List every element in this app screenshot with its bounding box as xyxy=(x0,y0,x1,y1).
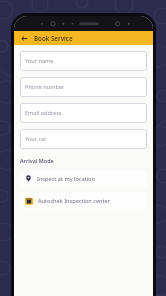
staticText: Inspect at my location xyxy=(37,175,95,183)
button[interactable]: Email address xyxy=(20,103,147,123)
button[interactable]: Autochek Inspection center xyxy=(20,192,147,209)
button[interactable]: Your car xyxy=(20,129,147,149)
staticText: Phone number xyxy=(25,83,65,91)
button[interactable]: Back xyxy=(18,32,30,44)
staticText: Your car xyxy=(25,135,47,143)
staticText: Autochek Inspection center xyxy=(38,197,111,205)
button[interactable]: Phone number xyxy=(20,77,147,97)
staticText: Arrival Mode xyxy=(20,157,54,164)
staticText: Book Service xyxy=(34,34,73,42)
staticText: Email address xyxy=(25,109,62,117)
button[interactable]: Your name xyxy=(20,51,147,71)
button[interactable]: Inspect at my location xyxy=(20,170,147,187)
staticText: Your name xyxy=(25,57,54,65)
